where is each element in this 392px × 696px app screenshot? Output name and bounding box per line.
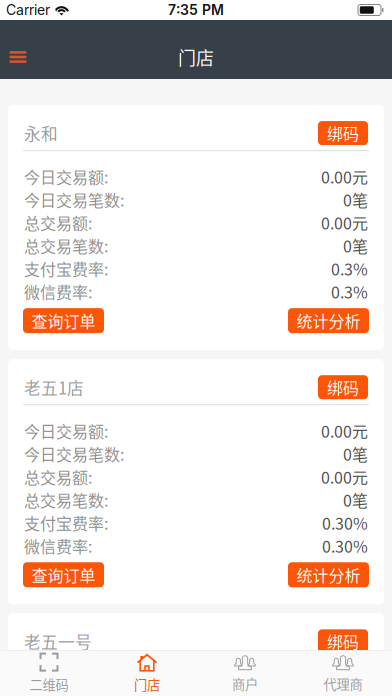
staticText: 微信费率: bbox=[24, 534, 92, 557]
staticText: 0笔 bbox=[343, 488, 368, 511]
button[interactable]: 统计分析 bbox=[288, 308, 369, 333]
staticText: 0.30% bbox=[322, 511, 368, 534]
staticText: 0.00元 bbox=[321, 165, 368, 188]
button[interactable]: 绑码 bbox=[318, 629, 368, 653]
staticText: 支付宝费率: bbox=[24, 257, 108, 280]
staticText: 老五1店 bbox=[24, 375, 84, 399]
staticText: 0笔 bbox=[343, 442, 368, 465]
staticText: 二维码 bbox=[29, 675, 68, 694]
button[interactable]: 查询订单 bbox=[23, 562, 104, 587]
button[interactable]: 绑码 bbox=[318, 121, 368, 145]
staticText: 永和 bbox=[24, 121, 58, 145]
staticText: 绑码 bbox=[327, 121, 359, 145]
staticText: 门店 bbox=[178, 44, 214, 70]
staticText: Carrier bbox=[6, 1, 50, 18]
staticText: 今日交易笔数: bbox=[24, 442, 124, 465]
staticText: 查询订单 bbox=[31, 309, 95, 332]
staticText: 统计分析 bbox=[296, 563, 360, 586]
staticText: 统计分析 bbox=[296, 309, 360, 332]
button[interactable]: 代理商 bbox=[294, 650, 392, 696]
button[interactable]: 二维码 bbox=[0, 650, 98, 696]
staticText: 7:35 PM bbox=[168, 1, 224, 18]
button[interactable]: Menu bbox=[0, 35, 40, 79]
staticText: 绑码 bbox=[327, 630, 359, 653]
staticText: 0.3% bbox=[331, 280, 368, 303]
button[interactable]: 统计分析 bbox=[288, 562, 369, 587]
staticText: 门店 bbox=[134, 675, 160, 694]
staticText: 0.00元 bbox=[321, 465, 368, 488]
staticText: 今日交易额: bbox=[24, 419, 108, 442]
staticText: 老五一号 bbox=[24, 629, 92, 653]
staticText: 支付宝费率: bbox=[24, 511, 108, 534]
staticText: 今日交易额: bbox=[24, 165, 108, 188]
staticText: 0笔 bbox=[343, 188, 368, 211]
staticText: 商户 bbox=[232, 674, 258, 693]
staticText: 微信费率: bbox=[24, 280, 92, 303]
staticText: 代理商 bbox=[323, 674, 362, 693]
staticText: 0.00元 bbox=[321, 673, 368, 696]
staticText: 0.30% bbox=[322, 534, 368, 557]
staticText: 0.00元 bbox=[321, 419, 368, 442]
staticText: 总交易额: bbox=[24, 465, 92, 488]
staticText: 0笔 bbox=[343, 234, 368, 257]
staticText: 绑码 bbox=[327, 376, 359, 399]
staticText: 今日交易额: bbox=[24, 673, 108, 696]
staticText: 0.00元 bbox=[321, 211, 368, 234]
button[interactable]: 门店 bbox=[98, 650, 196, 696]
staticText: 0.3% bbox=[331, 257, 368, 280]
button[interactable]: 查询订单 bbox=[23, 308, 104, 333]
button[interactable]: 绑码 bbox=[318, 375, 368, 399]
staticText: 查询订单 bbox=[31, 563, 95, 586]
staticText: 今日交易笔数: bbox=[24, 188, 124, 211]
staticText: 总交易额: bbox=[24, 211, 92, 234]
staticText: 总交易笔数: bbox=[24, 488, 108, 511]
button[interactable]: 商户 bbox=[196, 650, 294, 696]
staticText: 总交易笔数: bbox=[24, 234, 108, 257]
